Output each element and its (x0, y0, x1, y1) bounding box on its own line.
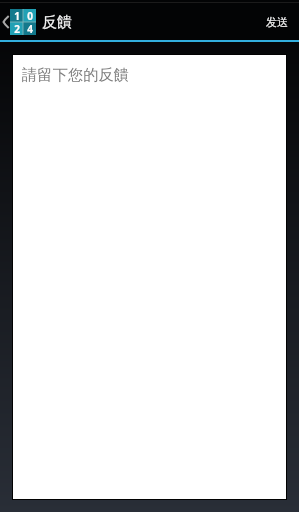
staticText: 1 (14, 9, 20, 22)
button[interactable]: 請留下您的反饋 (13, 55, 286, 499)
staticText: 4 (27, 22, 33, 35)
button[interactable]: Navigate up (0, 9, 36, 35)
staticText: 請留下您的反饋 (22, 65, 130, 84)
staticText: 发送 (266, 15, 288, 29)
staticText: 反饋 (42, 13, 72, 32)
staticText: 0 (27, 9, 33, 22)
staticText: 2 (14, 22, 20, 35)
button[interactable]: 发送 (255, 7, 299, 37)
